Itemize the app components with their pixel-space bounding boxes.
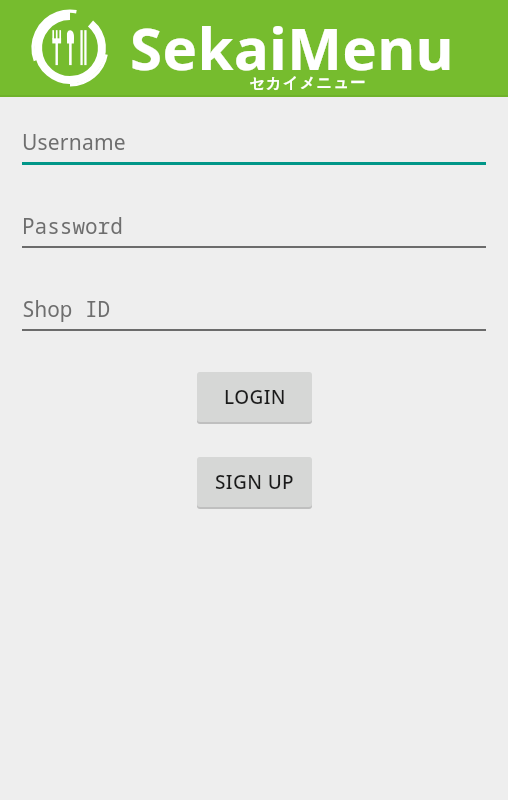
button[interactable]: LOGIN	[197, 372, 312, 422]
button[interactable]: SIGN UP	[197, 457, 312, 507]
staticText: Password	[22, 212, 123, 241]
staticText: Username	[22, 128, 126, 157]
staticText: セカイメニュー	[249, 74, 367, 93]
staticText: Shop ID	[22, 295, 111, 324]
button[interactable]: Username	[22, 128, 486, 165]
staticText: SekaiMenu	[130, 8, 454, 74]
staticText: SIGN UP	[215, 469, 295, 495]
button[interactable]: Password	[22, 212, 486, 248]
button[interactable]: Shop ID	[22, 295, 486, 331]
staticText: LOGIN	[224, 384, 286, 410]
